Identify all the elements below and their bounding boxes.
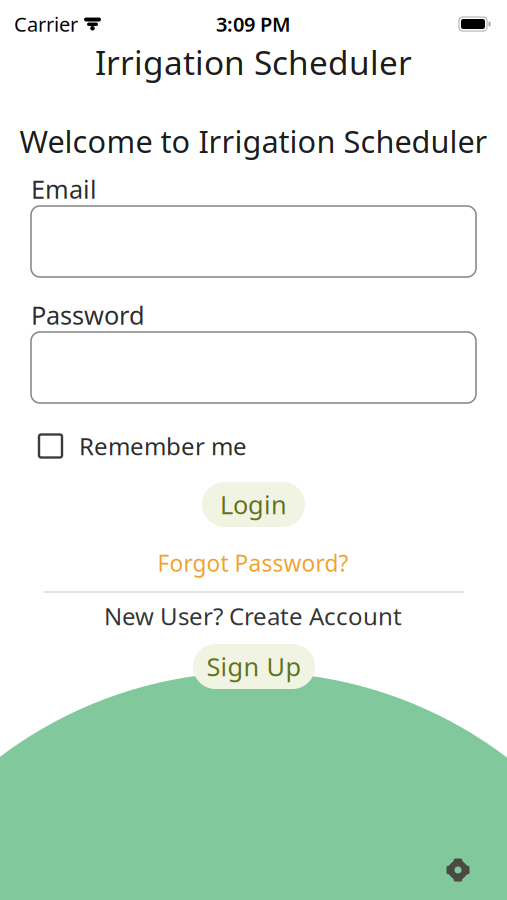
staticText: Irrigation Scheduler [95,40,412,84]
staticText: Carrier [14,11,78,37]
staticText: New User? Create Account [104,600,402,632]
staticText: 3:09 PM [216,11,291,37]
staticText: Sign Up [206,650,301,683]
staticText: Forgot Password? [157,548,348,578]
staticText: Login [220,488,287,521]
staticText: Welcome to Irrigation Scheduler [19,120,487,162]
staticText: Password [31,298,145,332]
button[interactable]: Remember me [39,429,269,463]
staticText: Remember me [79,430,247,462]
button[interactable]: New User? Create Account [83,603,423,629]
button[interactable]: Login [202,482,305,527]
button[interactable]: Forgot Password? [123,550,383,576]
button[interactable]: Settings [436,848,480,892]
button[interactable]: Sign Up [193,644,315,689]
staticText: Email [31,172,97,206]
